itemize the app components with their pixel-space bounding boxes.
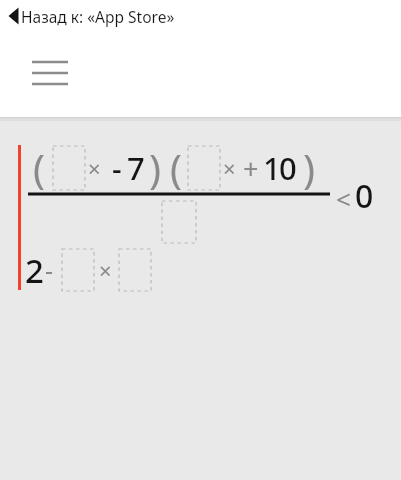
button[interactable] [0, 2, 240, 32]
button[interactable]: Menu [24, 52, 78, 96]
